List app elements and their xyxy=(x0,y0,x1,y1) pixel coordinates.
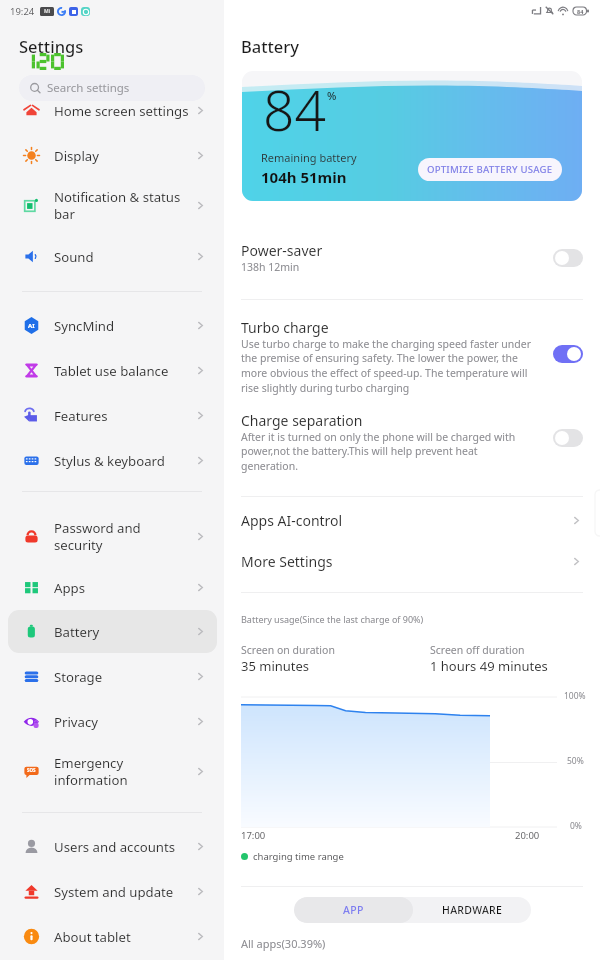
staticText: 104h 51min xyxy=(261,167,347,187)
other: Cast xyxy=(532,6,541,15)
staticText: After it is turned on only the phone wil… xyxy=(241,430,518,473)
staticText: HARDWARE xyxy=(442,903,503,917)
button[interactable]: HARDWARE xyxy=(413,897,531,923)
staticText: 50% xyxy=(567,755,584,767)
staticText: Password and security xyxy=(54,519,141,554)
staticText: Privacy xyxy=(54,713,98,731)
staticText: Battery xyxy=(241,35,300,57)
staticText: SyncMind xyxy=(54,317,115,335)
other: Wi-Fi xyxy=(558,6,568,16)
button[interactable]: Search settings xyxy=(19,75,205,101)
button[interactable]: Users and accounts xyxy=(8,825,217,868)
staticText: Screen off duration xyxy=(430,643,525,657)
staticText: Apps xyxy=(54,579,85,597)
other: Silent xyxy=(545,6,554,15)
staticText: Power-saver xyxy=(241,241,323,260)
staticText: 17:00 xyxy=(241,829,266,842)
staticText: Display xyxy=(54,147,99,165)
button[interactable]: About tablet xyxy=(8,915,217,958)
staticText: SOS xyxy=(27,767,36,773)
button[interactable]: Display xyxy=(8,134,217,177)
staticText: Battery usage(Since the last charge of 9… xyxy=(241,613,424,625)
button[interactable]: AI xyxy=(8,304,217,347)
staticText: Use turbo charge to make the charging sp… xyxy=(241,337,533,395)
staticText: charging time range xyxy=(253,850,344,863)
button[interactable]: Features xyxy=(8,394,217,437)
button[interactable]: System and update xyxy=(8,870,217,913)
staticText: Remaining battery xyxy=(261,150,357,165)
button[interactable]: Battery xyxy=(8,610,217,653)
staticText: Charge separation xyxy=(241,411,363,430)
staticText: Turbo charge xyxy=(241,318,329,337)
button[interactable]: Apps xyxy=(8,566,217,609)
staticText: 1 hours 49 minutes xyxy=(430,657,548,675)
button[interactable]: Turn on xyxy=(553,429,583,447)
staticText: OPTIMIZE BATTERY USAGE xyxy=(427,163,553,176)
button[interactable]: SOS xyxy=(8,750,217,793)
button[interactable]: Privacy xyxy=(8,700,217,743)
staticText: Battery xyxy=(54,623,100,641)
staticText: 84 xyxy=(577,8,584,15)
staticText: Notification & status bar xyxy=(54,188,181,223)
button[interactable]: Turn on xyxy=(553,249,583,267)
staticText: Home screen settings xyxy=(54,102,189,120)
staticText: APP xyxy=(343,903,364,917)
staticText: 20:00 xyxy=(515,829,540,842)
staticText: System and update xyxy=(54,883,174,901)
staticText: Settings xyxy=(19,35,84,57)
staticText: 138h 12min xyxy=(241,260,300,274)
staticText: 0% xyxy=(570,820,582,832)
staticText: 19:24 xyxy=(10,5,35,17)
staticText: % xyxy=(327,88,337,103)
staticText: About tablet xyxy=(54,928,131,946)
staticText: Mi xyxy=(44,8,51,15)
staticText: 35 minutes xyxy=(241,657,310,675)
button[interactable]: Home screen settings xyxy=(8,89,217,132)
staticText: Storage xyxy=(54,668,103,686)
button[interactable]: Power-saver xyxy=(224,232,600,284)
button[interactable]: Tablet use balance xyxy=(8,349,217,392)
button[interactable]: APP xyxy=(294,897,413,923)
button[interactable]: Apps AI-control xyxy=(224,500,600,541)
staticText: 100% xyxy=(564,690,586,702)
staticText: AI xyxy=(28,322,35,330)
button[interactable]: Password and security xyxy=(8,515,217,558)
staticText: 84 xyxy=(263,72,326,147)
staticText: Screen on duration xyxy=(241,643,335,657)
staticText: All apps(30.39%) xyxy=(241,936,326,951)
button[interactable]: More Settings xyxy=(224,541,600,582)
button[interactable]: Stylus & keyboard xyxy=(8,439,217,482)
staticText: Tablet use balance xyxy=(54,362,169,380)
staticText: Search settings xyxy=(47,80,130,96)
staticText: Sound xyxy=(54,248,94,266)
button[interactable]: Turn off xyxy=(553,345,583,363)
button[interactable]: Turbo charge xyxy=(224,310,600,398)
button[interactable]: Sound xyxy=(8,235,217,278)
button[interactable]: Charge separation xyxy=(224,404,600,478)
staticText: Users and accounts xyxy=(54,838,176,856)
button[interactable]: Notification & status bar xyxy=(8,184,217,227)
button[interactable]: Storage xyxy=(8,655,217,698)
staticText: Features xyxy=(54,407,108,425)
staticText: More Settings xyxy=(241,552,570,571)
staticText: Apps AI-control xyxy=(241,511,570,530)
button[interactable]: OPTIMIZE BATTERY USAGE xyxy=(418,158,562,181)
staticText: Emergency information xyxy=(54,754,128,789)
staticText: Stylus & keyboard xyxy=(54,452,165,470)
